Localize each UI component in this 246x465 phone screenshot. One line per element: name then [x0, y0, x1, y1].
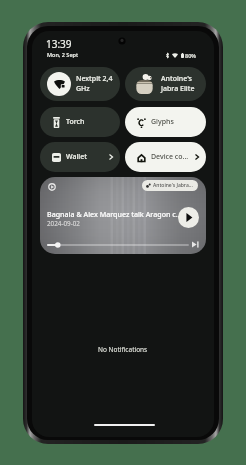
staticText: Mon, 2 Sept — [47, 51, 79, 58]
button[interactable]: Device co... — [125, 142, 206, 172]
button[interactable]: Antoine's Jabra... — [142, 180, 198, 191]
staticText: Antoine's Jabra... — [153, 182, 193, 189]
staticText: 13:39 — [46, 37, 72, 51]
staticText: Glyphs — [151, 117, 174, 127]
button[interactable]: Nextpit 2,4 GHz — [40, 67, 120, 101]
staticText: Bagnaia & Alex Marquez talk Aragon c... — [47, 209, 187, 219]
staticText: 80% — [185, 52, 196, 59]
staticText: Torch — [66, 117, 85, 127]
staticText: Antoine's Jabra Elite — [161, 74, 195, 94]
staticText: Wallet — [66, 152, 87, 162]
button[interactable]: Antoine's Jabra Elite — [125, 67, 206, 101]
button[interactable]: Glyphs — [125, 107, 206, 137]
staticText: Nextpit 2,4 GHz — [76, 74, 113, 94]
staticText: 2024-09-02 — [47, 219, 80, 228]
staticText: No Notifications — [98, 345, 148, 354]
button[interactable]: Wallet — [40, 142, 120, 172]
button[interactable]: Play — [178, 207, 199, 228]
button[interactable]: Next — [192, 241, 199, 248]
button[interactable]: Torch — [40, 107, 120, 137]
staticText: Device co... — [151, 152, 189, 162]
button[interactable]: Media app — [48, 183, 56, 191]
